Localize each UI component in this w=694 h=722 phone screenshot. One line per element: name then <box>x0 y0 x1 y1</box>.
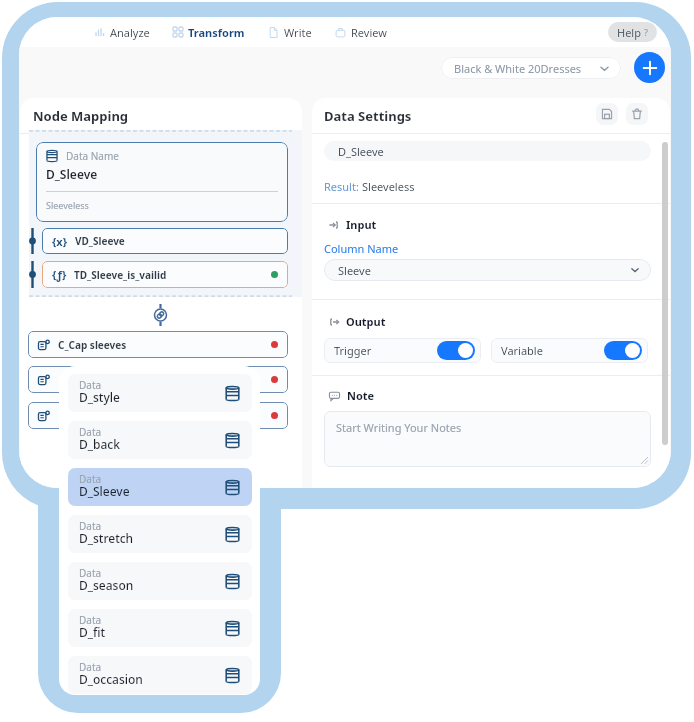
staticText: Data <box>79 519 102 533</box>
staticText: Data Settings <box>324 107 412 125</box>
button[interactable]: Trigger <box>324 338 481 363</box>
staticText: Sleeveless <box>362 179 415 194</box>
button[interactable]: {ƒ} <box>42 261 288 288</box>
button[interactable]: Start Writing Your Notes <box>324 411 651 467</box>
button[interactable]: Data <box>68 468 252 506</box>
staticText: Variable <box>501 343 543 358</box>
button[interactable]: Analyze <box>95 17 150 47</box>
staticText: Start Writing Your Notes <box>336 420 462 435</box>
button[interactable]: {x} <box>42 228 288 254</box>
staticText: TD_Sleeve_is_vailid <box>74 268 167 282</box>
button[interactable]: C_Cap sleeves <box>28 331 288 358</box>
staticText: Column Name <box>324 241 399 256</box>
button[interactable]: Help <box>608 22 657 42</box>
staticText: D_style <box>79 389 120 405</box>
staticText: Data <box>79 378 102 392</box>
staticText: Data Name <box>66 149 119 163</box>
staticText: D_stretch <box>79 530 134 546</box>
staticText: Data <box>79 425 102 439</box>
staticText: Input <box>346 217 377 232</box>
staticText: Result: <box>324 179 362 194</box>
staticText: Write <box>284 25 312 40</box>
staticText: VD_Sleeve <box>75 234 125 248</box>
staticText: Transform <box>188 25 245 40</box>
button[interactable]: Sleeve <box>324 259 651 281</box>
button[interactable]: Save <box>596 103 618 125</box>
staticText: Review <box>351 25 387 40</box>
staticText: Data <box>79 660 102 674</box>
button[interactable]: Review <box>335 17 387 47</box>
staticText: Analyze <box>110 25 150 40</box>
button[interactable]: D_Sleeve <box>324 141 651 161</box>
button[interactable]: Data <box>68 374 252 412</box>
button[interactable]: Write <box>268 17 312 47</box>
staticText: D_season <box>79 577 134 593</box>
button[interactable]: Data <box>68 421 252 459</box>
staticText: D_Sleeve <box>46 166 98 182</box>
staticText: D_Sleeve <box>79 483 130 499</box>
button[interactable]: Data Name <box>36 142 288 222</box>
staticText: {x} <box>52 234 68 249</box>
button[interactable] <box>28 402 288 429</box>
staticText: D_occasion <box>79 671 143 687</box>
button[interactable]: Add <box>634 52 665 83</box>
staticText: Data <box>79 566 102 580</box>
staticText: Help <box>617 25 641 40</box>
staticText: D_back <box>79 436 120 452</box>
staticText: Node Mapping <box>33 107 129 125</box>
staticText: Trigger <box>334 343 372 358</box>
staticText: Output <box>346 314 386 329</box>
button[interactable]: Data <box>68 562 252 600</box>
button[interactable]: Variable <box>491 338 648 363</box>
button[interactable]: Data <box>68 609 252 647</box>
staticText: D_Sleeve <box>338 144 384 159</box>
button[interactable]: Data <box>68 656 252 694</box>
staticText: Black & White 20Dresses <box>454 61 582 76</box>
staticText: Sleeveless <box>46 199 89 211</box>
staticText: D_fit <box>79 624 106 640</box>
staticText: Data <box>79 472 102 486</box>
button[interactable]: Black & White 20Dresses <box>441 57 621 79</box>
button[interactable]: Data <box>68 515 252 553</box>
staticText: Note <box>347 388 375 403</box>
button[interactable]: Delete <box>626 103 648 125</box>
staticText: Sleeve <box>338 263 371 278</box>
staticText: Data <box>79 613 102 627</box>
staticText: ? <box>644 26 648 38</box>
staticText: C_Cap sleeves <box>58 338 127 352</box>
button[interactable]: Transform <box>173 17 245 47</box>
staticText: {ƒ} <box>52 267 67 282</box>
button[interactable] <box>28 366 288 393</box>
